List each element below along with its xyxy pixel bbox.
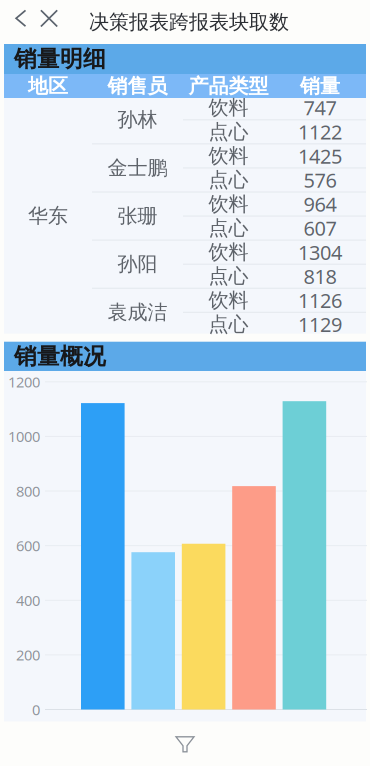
staticText: 饮料 (208, 95, 248, 120)
button[interactable]: Filter (163, 722, 207, 766)
button[interactable]: Back (7, 0, 35, 44)
staticText: 1304 (298, 239, 342, 265)
staticText: 1000 (8, 427, 40, 446)
staticText: 400 (16, 590, 40, 610)
staticText: 1122 (298, 119, 342, 145)
staticText: 点心 (208, 264, 248, 288)
staticText: 0 (32, 700, 40, 719)
staticText: 1200 (8, 372, 40, 392)
staticText: 200 (16, 645, 40, 665)
staticText: 964 (303, 191, 336, 217)
staticText: 818 (303, 263, 336, 289)
staticText: 产品类型 (188, 74, 268, 98)
staticText: 点心 (208, 120, 248, 144)
staticText: 饮料 (208, 288, 248, 313)
staticText: 孙阳 (117, 252, 157, 276)
staticText: 600 (16, 536, 40, 555)
staticText: 饮料 (208, 240, 248, 264)
staticText: 点心 (208, 216, 248, 240)
staticText: 607 (303, 215, 336, 241)
staticText: 1129 (298, 311, 342, 338)
staticText: 销量明细 (14, 45, 106, 73)
staticText: 点心 (208, 312, 248, 337)
staticText: 饮料 (208, 192, 248, 216)
button[interactable]: Close (35, 0, 63, 44)
staticText: 800 (16, 481, 40, 501)
staticText: 袁成洁 (107, 300, 167, 325)
staticText: 饮料 (208, 144, 248, 168)
staticText: 1425 (298, 143, 342, 169)
staticText: 张珊 (117, 204, 157, 228)
staticText: 747 (303, 94, 336, 121)
staticText: 决策报表跨报表块取数 (89, 10, 289, 34)
staticText: 销量 (300, 74, 340, 98)
staticText: 销量概况 (14, 342, 106, 370)
staticText: 金士鹏 (107, 156, 167, 180)
staticText: 孙林 (117, 107, 157, 132)
staticText: 销售员 (107, 74, 167, 98)
staticText: 地区 (28, 74, 68, 98)
staticText: 1126 (298, 287, 342, 314)
staticText: 华东 (28, 203, 68, 228)
staticText: 576 (303, 167, 336, 193)
staticText: 点心 (208, 168, 248, 192)
